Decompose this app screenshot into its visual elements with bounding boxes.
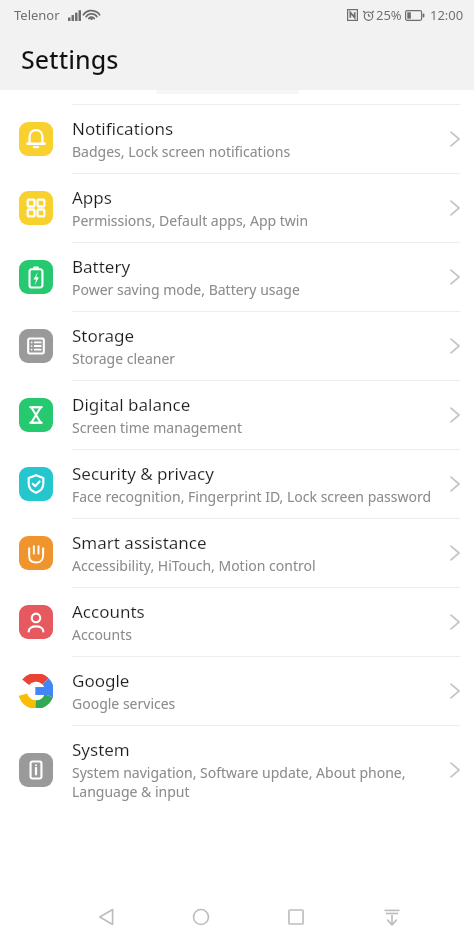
staticText: Accounts bbox=[72, 625, 132, 644]
staticText: Battery bbox=[72, 255, 131, 278]
button[interactable]: Back bbox=[58, 886, 153, 948]
button[interactable]: Digital balance bbox=[0, 381, 474, 449]
staticText: Accounts bbox=[72, 600, 145, 623]
staticText: Digital balance bbox=[72, 393, 191, 416]
staticText: System bbox=[72, 738, 130, 761]
staticText: Accessibility, HiTouch, Motion control bbox=[72, 556, 316, 575]
staticText: Settings bbox=[21, 42, 119, 76]
button[interactable]: Security & privacy bbox=[0, 450, 474, 518]
staticText: Security & privacy bbox=[72, 462, 214, 485]
button[interactable]: Hide navigation bar bbox=[344, 886, 440, 948]
staticText: System navigation, Software update, Abou… bbox=[72, 763, 442, 801]
staticText: Telenor bbox=[14, 6, 60, 24]
button[interactable]: Smart assistance bbox=[0, 519, 474, 587]
staticText: Storage bbox=[72, 324, 135, 347]
staticText: Face recognition, Fingerprint ID, Lock s… bbox=[72, 487, 432, 506]
button[interactable]: Accounts bbox=[0, 588, 474, 656]
staticText: Storage cleaner bbox=[72, 349, 176, 368]
button[interactable]: Google bbox=[0, 657, 474, 725]
staticText: Notifications bbox=[72, 117, 174, 140]
staticText: Google services bbox=[72, 694, 176, 713]
staticText: Apps bbox=[72, 186, 112, 209]
staticText: Google bbox=[72, 669, 130, 692]
button[interactable]: Notifications bbox=[0, 105, 474, 173]
staticText: Permissions, Default apps, App twin bbox=[72, 211, 309, 230]
button[interactable]: Home bbox=[153, 886, 248, 948]
button[interactable]: Storage bbox=[0, 312, 474, 380]
button[interactable]: Recent apps bbox=[248, 886, 344, 948]
staticText: 25% bbox=[376, 6, 402, 24]
staticText: Screen time management bbox=[72, 418, 242, 437]
staticText: Smart assistance bbox=[72, 531, 207, 554]
button[interactable]: Battery bbox=[0, 243, 474, 311]
staticText: 12:00 bbox=[430, 6, 464, 24]
button[interactable]: System bbox=[0, 726, 474, 813]
staticText: Badges, Lock screen notifications bbox=[72, 142, 291, 161]
button[interactable]: Apps bbox=[0, 174, 474, 242]
staticText: Power saving mode, Battery usage bbox=[72, 280, 300, 299]
